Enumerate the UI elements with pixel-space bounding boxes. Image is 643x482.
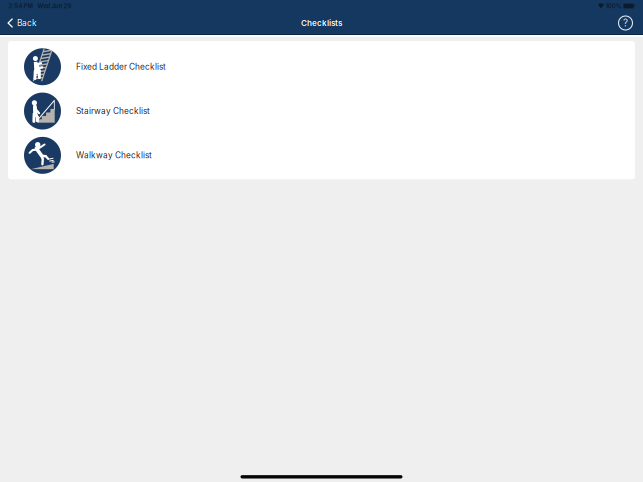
staticText: Checklists — [301, 18, 342, 28]
staticText: Fixed Ladder Checklist — [76, 62, 166, 72]
staticText: ? — [623, 17, 628, 29]
button[interactable]: Fixed Ladder Checklist — [8, 45, 635, 89]
staticText: Wed Jun 29 — [38, 2, 72, 10]
staticText: 100% — [606, 2, 622, 10]
staticText: Walkway Checklist — [76, 150, 152, 160]
button[interactable]: Stairway Checklist — [8, 89, 635, 133]
staticText: 2:54 PM — [9, 2, 33, 10]
staticText: Back — [17, 18, 37, 28]
button[interactable]: Walkway Checklist — [8, 133, 635, 177]
staticText: Stairway Checklist — [76, 106, 150, 116]
button[interactable]: Help — [612, 13, 643, 32]
button[interactable]: Back — [0, 15, 45, 31]
